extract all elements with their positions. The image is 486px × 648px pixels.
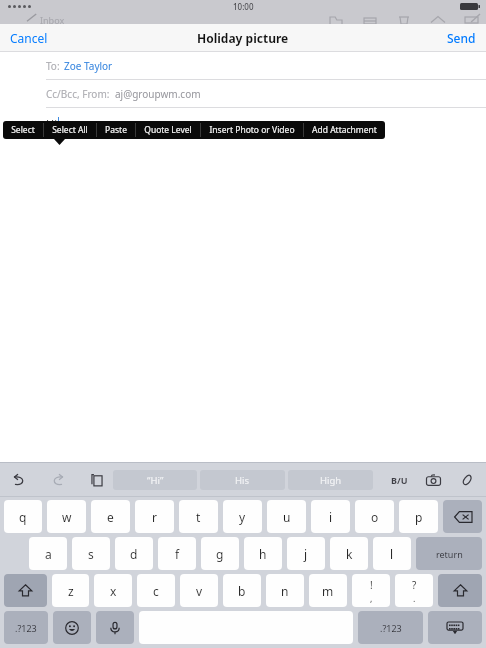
button[interactable]: Undo	[10, 471, 28, 489]
button[interactable]: t	[179, 500, 218, 533]
staticText: Select All	[52, 124, 88, 136]
staticText: r	[152, 509, 157, 525]
button[interactable]: a	[29, 537, 67, 570]
staticText: ?	[412, 578, 417, 592]
button[interactable]: Text formatting	[391, 474, 408, 486]
button[interactable]: Paste	[88, 471, 106, 489]
button[interactable]: Insert Photo or Video	[201, 121, 303, 139]
staticText: Add Attachment	[312, 124, 377, 136]
staticText: z	[68, 583, 74, 599]
button[interactable]: return	[416, 537, 482, 570]
staticText: q	[19, 509, 27, 525]
staticText: Cancel	[10, 30, 48, 46]
staticText: k	[346, 546, 353, 562]
button[interactable]: Select	[3, 121, 43, 139]
button[interactable]: Select All	[44, 121, 96, 139]
staticText: Insert Photo or Video	[209, 124, 295, 136]
button[interactable]: Shift	[438, 574, 482, 607]
button[interactable]: m	[309, 574, 347, 607]
button[interactable]: .?123	[358, 611, 423, 644]
button[interactable]: High	[288, 470, 373, 490]
staticText: !	[370, 578, 373, 592]
button[interactable]: x	[94, 574, 132, 607]
button[interactable]: s	[72, 537, 110, 570]
button[interactable]: Backspace	[443, 500, 482, 533]
staticText: o	[371, 509, 379, 525]
staticText: x	[110, 583, 117, 599]
staticText: aj@groupwm.com	[115, 87, 201, 101]
staticText: y	[239, 509, 246, 525]
staticText: c	[153, 583, 159, 599]
button[interactable]: Quote Level	[136, 121, 200, 139]
button[interactable]: Shift	[4, 574, 47, 607]
button[interactable]: b	[223, 574, 261, 607]
button[interactable]: Camera	[424, 471, 442, 489]
staticText: h	[259, 546, 267, 562]
button[interactable]: To:	[0, 52, 486, 79]
button[interactable]: f	[158, 537, 196, 570]
button[interactable]: r	[135, 500, 174, 533]
staticText: Hi	[46, 116, 57, 131]
staticText: l	[390, 546, 394, 562]
button[interactable]: !	[352, 574, 390, 607]
button[interactable]: n	[266, 574, 304, 607]
staticText: a	[45, 546, 52, 562]
button[interactable]: k	[330, 537, 368, 570]
staticText: f	[175, 546, 180, 562]
staticText: return	[436, 548, 463, 560]
button[interactable]: h	[244, 537, 282, 570]
button[interactable]: Send	[437, 25, 486, 51]
staticText: B/U	[391, 474, 408, 486]
button[interactable]: e	[91, 500, 130, 533]
button[interactable]: Paste	[97, 121, 135, 139]
staticText: m	[322, 583, 334, 599]
button[interactable]: u	[267, 500, 306, 533]
button[interactable]: j	[287, 537, 325, 570]
staticText: Quote Level	[144, 124, 192, 136]
button[interactable]: Emoji	[53, 611, 91, 644]
button[interactable]: Attach	[458, 471, 476, 489]
button[interactable]: g	[201, 537, 239, 570]
staticText: w	[62, 509, 72, 525]
staticText: u	[283, 509, 291, 525]
button[interactable]: His	[200, 470, 285, 490]
button[interactable]: w	[47, 500, 86, 533]
staticText: g	[216, 546, 224, 562]
staticText: “Hi”	[147, 474, 164, 487]
button[interactable]: p	[399, 500, 438, 533]
staticText: j	[304, 546, 308, 562]
staticText: Zoe Taylor	[64, 59, 113, 73]
staticText: .?123	[15, 622, 37, 634]
button[interactable]: i	[311, 500, 350, 533]
staticText: Holiday picture	[197, 30, 289, 46]
staticText: Send	[447, 30, 476, 46]
staticText: His	[235, 474, 250, 487]
button[interactable]: l	[373, 537, 411, 570]
button[interactable]: Dictation	[96, 611, 134, 644]
button[interactable]: Cc/Bcc, From:	[0, 80, 486, 107]
button[interactable]: Redo	[49, 471, 67, 489]
staticText: i	[329, 509, 333, 525]
button[interactable]: .?123	[4, 611, 48, 644]
staticText: p	[415, 509, 423, 525]
button[interactable]: y	[223, 500, 262, 533]
staticText: b	[238, 583, 246, 599]
button[interactable]: d	[115, 537, 153, 570]
staticText: Inbox	[40, 14, 65, 24]
button[interactable]: Hide keyboard	[428, 611, 482, 644]
button[interactable]: v	[180, 574, 218, 607]
button[interactable]: z	[52, 574, 89, 607]
button[interactable]: q	[4, 500, 42, 533]
staticText: Select	[11, 124, 35, 136]
button[interactable]: Cancel	[0, 25, 58, 51]
button[interactable]: ?	[395, 574, 433, 607]
staticText: v	[196, 583, 203, 599]
staticText: Cc/Bcc, From:	[46, 87, 110, 101]
button[interactable]: “Hi”	[113, 470, 197, 490]
staticText: n	[281, 583, 289, 599]
button[interactable]: c	[137, 574, 175, 607]
staticText: d	[130, 546, 138, 562]
button[interactable]: o	[355, 500, 394, 533]
button[interactable]: Add Attachment	[304, 121, 385, 139]
